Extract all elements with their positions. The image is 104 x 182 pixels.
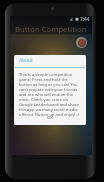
staticText: About xyxy=(19,57,33,64)
button[interactable]: OK xyxy=(14,113,86,125)
staticText: 7:44 xyxy=(80,16,90,22)
staticText: Button Competition xyxy=(15,24,87,34)
button[interactable]: Press and hold button xyxy=(76,37,87,48)
staticText: This is a simple competition game! Press… xyxy=(19,72,81,117)
staticText: OK xyxy=(47,115,53,121)
